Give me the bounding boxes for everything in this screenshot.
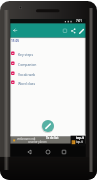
staticText: tap.it [76, 140, 83, 144]
button[interactable] [77, 26, 86, 35]
staticText: Companion [18, 62, 37, 67]
button[interactable] [60, 148, 68, 156]
button[interactable] [44, 148, 52, 156]
staticText: Vocab web [18, 72, 36, 77]
button[interactable]: Key steps [10, 50, 70, 60]
button[interactable] [11, 25, 20, 35]
button[interactable]: Companion [10, 60, 70, 70]
button[interactable]: Word class [10, 79, 70, 89]
staticText: 7:01 [76, 19, 82, 23]
staticText: verbessern mit [17, 137, 36, 141]
button[interactable] [69, 26, 77, 35]
button[interactable] [61, 26, 69, 35]
staticText: 15.05 [11, 39, 20, 43]
staticText: To do list [46, 136, 59, 140]
button[interactable]: Vocab web [10, 70, 70, 80]
staticText: Word class [18, 81, 36, 86]
button[interactable] [42, 120, 54, 132]
staticText: smarter planen [28, 140, 47, 144]
staticText: tap.it [76, 136, 85, 140]
staticText: Key steps [18, 52, 34, 57]
button[interactable] [25, 148, 33, 156]
